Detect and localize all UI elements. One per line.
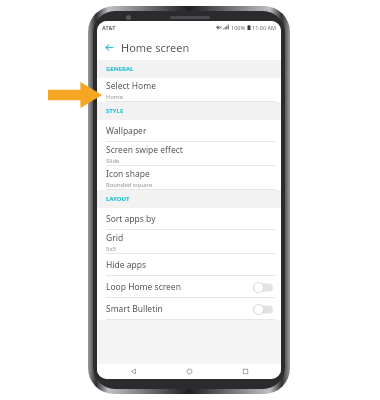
button[interactable]: Select Home bbox=[97, 78, 281, 102]
staticText: Home screen bbox=[121, 40, 190, 55]
staticText: Screen swipe effect bbox=[106, 144, 183, 156]
button[interactable]: Home bbox=[169, 364, 209, 379]
staticText: Smart Bulletin bbox=[106, 303, 163, 315]
staticText: Select Home bbox=[106, 80, 156, 92]
staticText: GENERAL bbox=[106, 65, 134, 73]
button[interactable]: Grid bbox=[97, 230, 281, 254]
staticText: Sort apps by bbox=[106, 213, 156, 225]
staticText: Icon shape bbox=[106, 168, 150, 180]
staticText: 5x5 bbox=[106, 245, 117, 253]
staticText: Hide apps bbox=[106, 259, 147, 271]
staticText: LAYOUT bbox=[106, 195, 130, 203]
staticText: Rounded square bbox=[106, 181, 153, 189]
button[interactable]: Icon shape bbox=[97, 166, 281, 190]
staticText: Slide bbox=[106, 157, 120, 165]
button[interactable]: Toggle Smart Bulletin bbox=[253, 304, 273, 315]
staticText: Home bbox=[106, 93, 124, 101]
button[interactable]: Smart Bulletin bbox=[97, 298, 281, 320]
button[interactable]: Hide apps bbox=[97, 254, 281, 276]
button[interactable]: Recent apps bbox=[225, 364, 265, 379]
button[interactable]: Loop Home screen bbox=[97, 276, 281, 298]
staticText: Loop Home screen bbox=[106, 281, 181, 293]
button[interactable]: Toggle Loop Home screen bbox=[253, 282, 273, 293]
button[interactable]: Back bbox=[97, 34, 121, 60]
staticText: STYLE bbox=[106, 107, 124, 115]
staticText: 100% bbox=[231, 24, 246, 31]
button[interactable]: Back bbox=[113, 364, 153, 379]
button[interactable]: Sort apps by bbox=[97, 208, 281, 230]
staticText: 11:00 AM bbox=[252, 24, 276, 31]
staticText: Wallpaper bbox=[106, 125, 147, 137]
staticText: AT&T bbox=[102, 24, 116, 31]
button[interactable]: Wallpaper bbox=[97, 120, 281, 142]
staticText: Grid bbox=[106, 232, 124, 244]
button[interactable]: Screen swipe effect bbox=[97, 142, 281, 166]
